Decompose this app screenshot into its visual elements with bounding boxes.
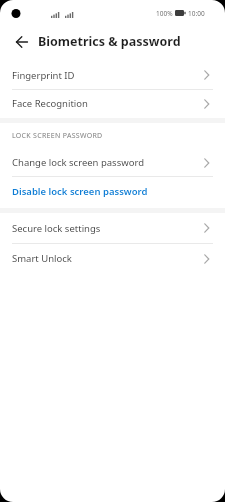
button[interactable] (10, 30, 34, 54)
staticText: Face Recognition (12, 97, 88, 110)
staticText: LOCK SCREEN PASSWORD (12, 131, 103, 141)
staticText: Change lock screen password (12, 156, 145, 169)
button[interactable]: Smart Unlock (0, 244, 225, 273)
staticText: 100% (156, 9, 173, 18)
button[interactable]: Change lock screen password (0, 149, 225, 176)
staticText: Secure lock settings (12, 222, 101, 235)
button[interactable]: Disable lock screen password (0, 177, 225, 205)
staticText: 10:00 (188, 9, 205, 18)
button[interactable]: Secure lock settings (0, 213, 225, 243)
staticText: Biometrics & password (38, 33, 181, 50)
button[interactable]: Face Recognition (0, 90, 225, 117)
button[interactable]: Fingerprint ID (0, 61, 225, 89)
staticText: Fingerprint ID (12, 69, 75, 82)
staticText: Smart Unlock (12, 252, 72, 265)
staticText: Disable lock screen password (12, 185, 148, 198)
